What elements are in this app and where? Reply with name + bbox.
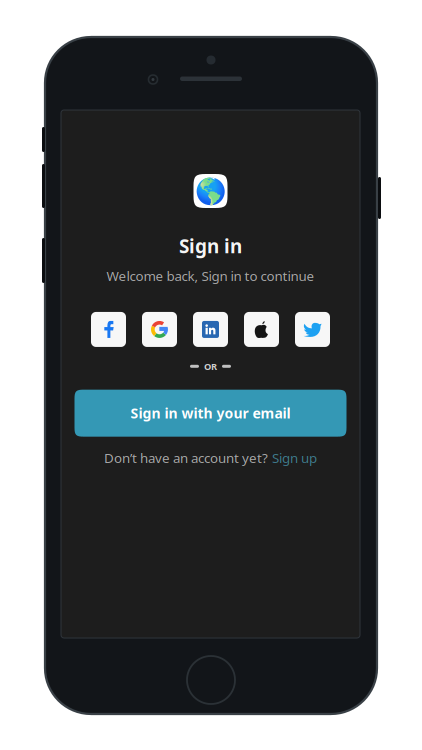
staticText: 🌎 xyxy=(194,176,226,206)
button[interactable]: Sign in with your email xyxy=(74,390,346,437)
staticText: Welcome back, Sign in to continue xyxy=(106,267,314,285)
button[interactable]: Sign in with Twitter xyxy=(295,312,330,347)
staticText: Sign in xyxy=(179,233,242,259)
staticText: Sign in with your email xyxy=(130,404,290,423)
staticText: Sign up xyxy=(272,449,317,467)
button[interactable]: Sign in with LinkedIn xyxy=(193,312,228,347)
button[interactable]: Sign up xyxy=(272,449,317,467)
button[interactable]: Sign in with Google xyxy=(142,312,177,347)
button[interactable]: Sign in with Facebook xyxy=(91,312,126,347)
button[interactable]: Sign in with Apple xyxy=(244,312,279,347)
staticText: OR xyxy=(204,360,217,373)
staticText: Don’t have an account yet? xyxy=(104,449,268,467)
